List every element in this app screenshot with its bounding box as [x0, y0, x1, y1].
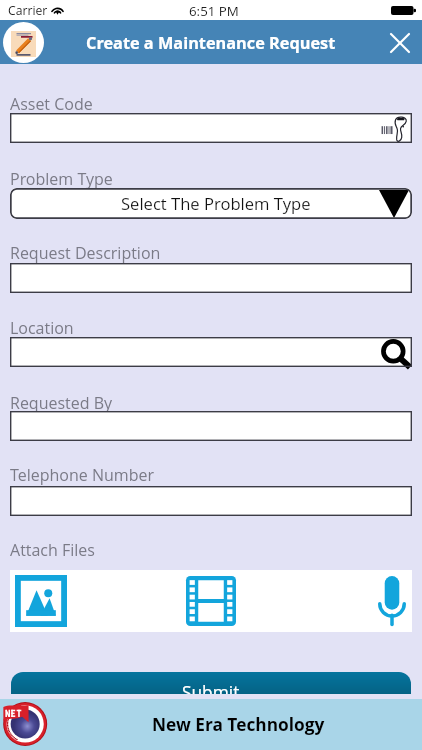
staticText: Asset Code	[10, 93, 93, 115]
button[interactable]	[10, 263, 412, 293]
button[interactable]	[10, 337, 412, 367]
staticText: Telephone Number	[10, 464, 155, 486]
staticText: 6:51 PM	[189, 2, 239, 20]
button[interactable]: Select The Problem Type	[10, 188, 412, 219]
button[interactable]: Record audio	[278, 570, 412, 632]
button[interactable]: Submit	[11, 672, 411, 714]
button[interactable]	[10, 411, 412, 441]
staticText: Attach Files	[10, 539, 95, 561]
button[interactable]	[10, 113, 412, 143]
staticText: Carrier	[8, 2, 48, 19]
button[interactable]: Close	[386, 29, 414, 57]
button[interactable]	[10, 486, 412, 516]
button[interactable]: Scan request	[3, 22, 44, 63]
staticText: Requested By	[10, 392, 113, 414]
button[interactable]: Attach photo	[10, 570, 144, 632]
staticText: Request Description	[10, 242, 161, 264]
button[interactable]: Attach video	[144, 570, 278, 632]
staticText: Problem Type	[10, 168, 113, 190]
staticText: New Era Technology	[152, 713, 325, 737]
staticText: Location	[10, 317, 74, 339]
staticText: Select The Problem Type	[121, 192, 311, 215]
staticText: Submit	[182, 681, 240, 705]
staticText: Create a Maintenance Request	[86, 32, 336, 54]
